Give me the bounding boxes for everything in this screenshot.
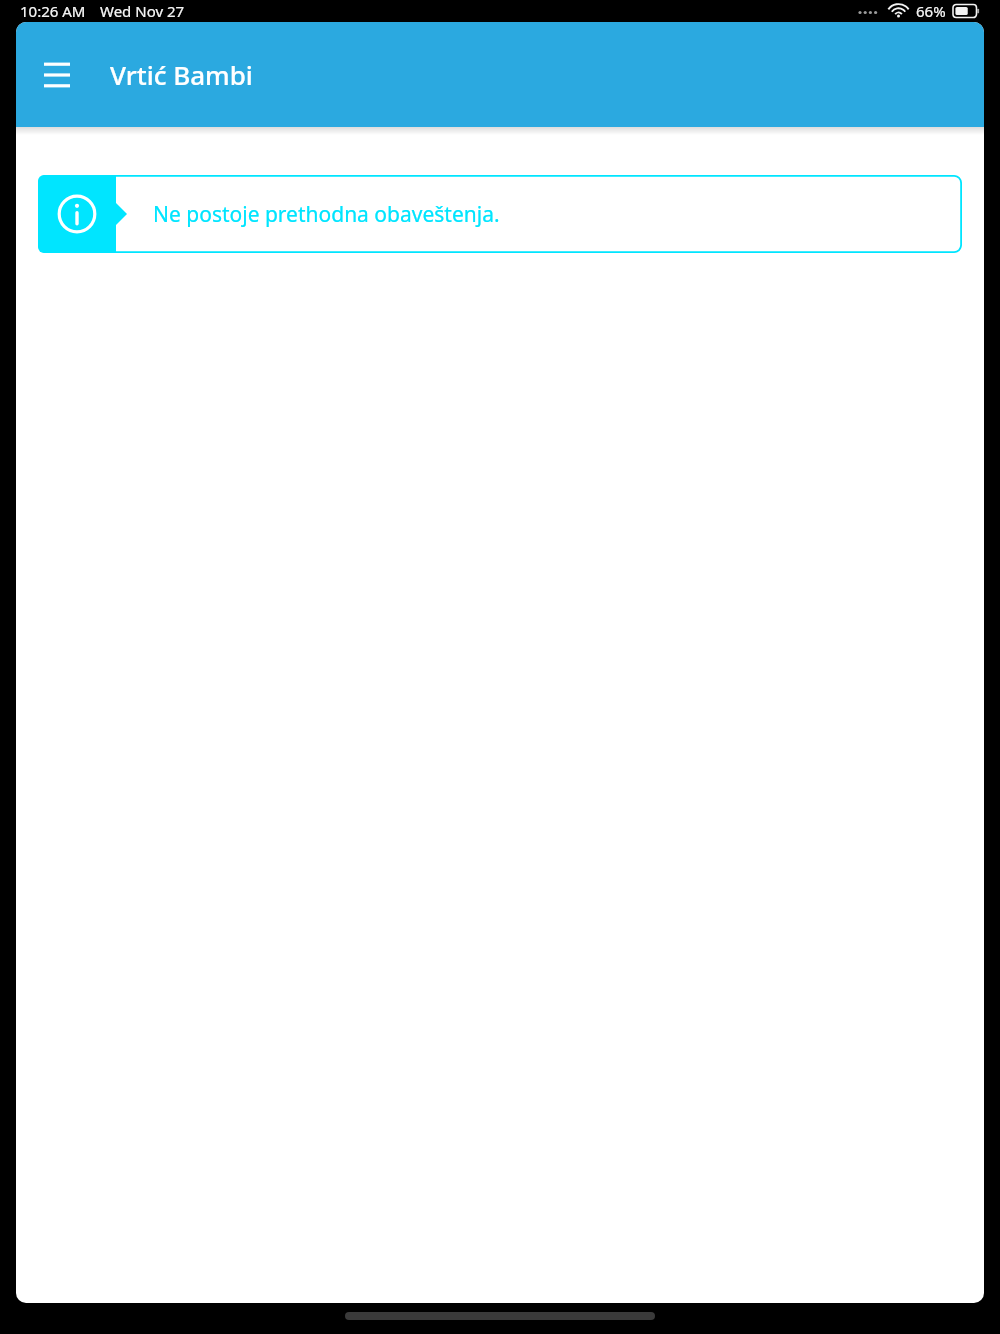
staticText: Vrtić Bambi — [110, 57, 253, 92]
staticText: Ne postoje prethodna obaveštenja. — [153, 200, 500, 229]
staticText: 10:26 AM — [20, 1, 86, 21]
staticText: Wed Nov 27 — [100, 1, 185, 21]
button[interactable]: Ne postoje prethodna obaveštenja. — [38, 175, 962, 253]
button[interactable]: Open navigation menu — [29, 47, 85, 103]
staticText: 66% — [916, 1, 946, 21]
